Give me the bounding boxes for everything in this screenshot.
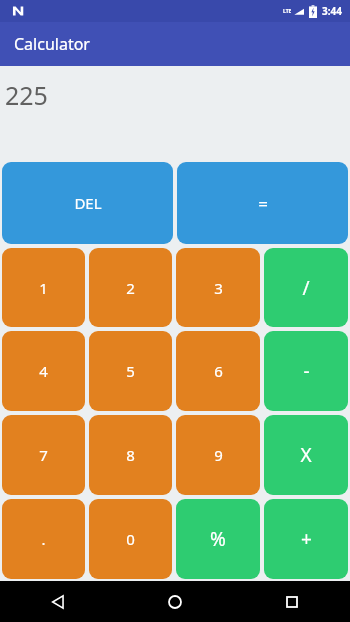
staticText: 8 xyxy=(126,445,135,465)
staticText: 2 xyxy=(126,278,135,298)
button[interactable]: 6 xyxy=(176,331,260,411)
staticText: 5 xyxy=(126,361,135,381)
button[interactable]: 9 xyxy=(176,415,260,495)
button[interactable]: - xyxy=(264,331,348,411)
button[interactable]: 8 xyxy=(89,415,172,495)
staticText: . xyxy=(41,529,46,549)
button[interactable]: X xyxy=(264,415,348,495)
staticText: = xyxy=(258,192,268,215)
staticText: 4 xyxy=(39,361,48,381)
button[interactable]: DEL xyxy=(2,162,173,244)
button[interactable]: . xyxy=(2,499,85,579)
button[interactable]: = xyxy=(177,162,348,244)
staticText: X xyxy=(300,442,312,468)
staticText: 1 xyxy=(39,278,48,298)
staticText: + xyxy=(301,526,312,552)
staticText: Calculator xyxy=(14,33,90,55)
staticText: / xyxy=(302,275,310,301)
staticText: 6 xyxy=(214,361,223,381)
button[interactable]: + xyxy=(264,499,348,579)
staticText: 0 xyxy=(126,529,135,549)
button[interactable]: Recent apps xyxy=(270,581,314,622)
staticText: 225 xyxy=(5,78,48,112)
button[interactable]: % xyxy=(176,499,260,579)
staticText: 3 xyxy=(214,278,223,298)
button[interactable]: 0 xyxy=(89,499,172,579)
button[interactable]: / xyxy=(264,248,348,327)
staticText: - xyxy=(303,358,310,384)
button[interactable]: Home xyxy=(153,581,197,622)
button[interactable]: 3 xyxy=(176,248,260,327)
staticText: 9 xyxy=(214,445,223,465)
button[interactable]: 7 xyxy=(2,415,85,495)
button[interactable]: 5 xyxy=(89,331,172,411)
button[interactable]: Back xyxy=(36,581,80,622)
staticText: 7 xyxy=(39,445,48,465)
staticText: 3:44 xyxy=(322,4,342,18)
button[interactable]: 4 xyxy=(2,331,85,411)
button[interactable]: 1 xyxy=(2,248,85,327)
staticText: DEL xyxy=(74,193,102,213)
staticText: LTE xyxy=(283,8,292,15)
staticText: % xyxy=(210,526,226,552)
button[interactable]: 2 xyxy=(89,248,172,327)
